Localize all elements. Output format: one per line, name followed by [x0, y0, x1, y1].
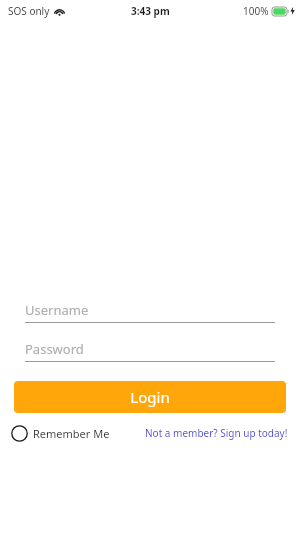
button[interactable]: Remember Me: [11, 425, 110, 442]
staticText: 100%: [243, 4, 269, 18]
staticText: Remember Me: [33, 426, 110, 441]
staticText: SOS only: [8, 4, 50, 18]
button[interactable]: Not a member? Sign up today!: [145, 426, 288, 440]
button[interactable]: Password: [25, 337, 275, 362]
staticText: Not a member? Sign up today!: [145, 426, 288, 440]
staticText: Password: [25, 340, 84, 358]
staticText: Login: [130, 387, 170, 407]
staticText: 3:43 pm: [131, 4, 170, 18]
button[interactable]: Login: [14, 381, 286, 413]
button[interactable]: Username: [25, 298, 275, 323]
staticText: Username: [25, 301, 89, 319]
